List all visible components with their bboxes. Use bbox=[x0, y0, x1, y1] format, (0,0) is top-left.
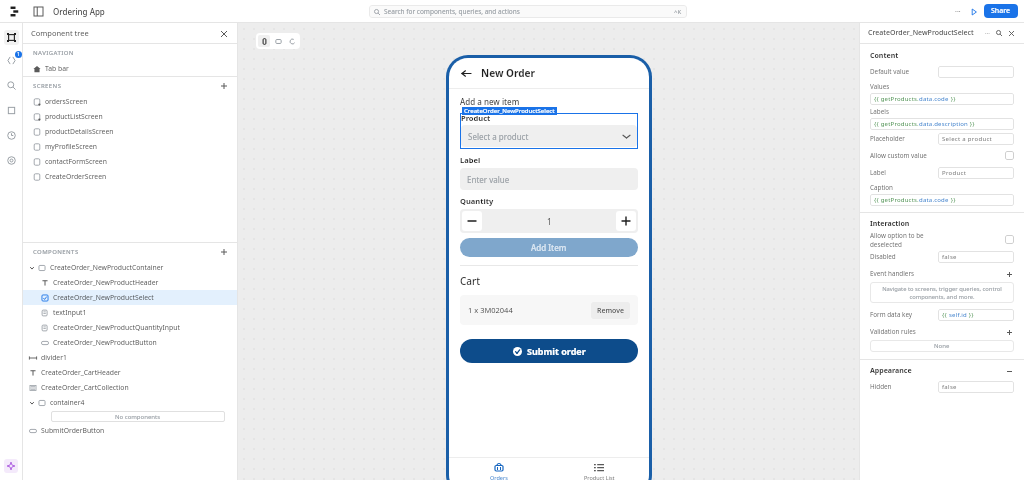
button[interactable]: {{ getProducts. bbox=[870, 93, 1014, 105]
button[interactable]: Rotate bbox=[286, 35, 298, 47]
button[interactable]: CreateOrder_NewProductContainer bbox=[23, 260, 237, 275]
staticText: CreateOrder_NewProductHeader bbox=[53, 278, 159, 287]
button[interactable]: false bbox=[938, 381, 1014, 393]
button[interactable]: container4 bbox=[23, 395, 237, 410]
button[interactable]: Submit order bbox=[460, 339, 638, 363]
button[interactable]: Components bbox=[4, 30, 19, 45]
staticText: Hidden bbox=[870, 382, 892, 391]
button[interactable]: {{ getProducts. bbox=[870, 118, 1014, 130]
button[interactable]: None bbox=[870, 340, 1014, 352]
button[interactable]: Toggle bbox=[1005, 235, 1014, 244]
button[interactable]: Add Item bbox=[460, 238, 638, 257]
button[interactable]: More bbox=[982, 28, 992, 38]
button[interactable]: AI assistant bbox=[4, 459, 18, 473]
button[interactable]: Search for components, queries, and acti… bbox=[369, 5, 687, 18]
button[interactable]: Search property bbox=[994, 28, 1004, 38]
staticText: Product bbox=[942, 169, 967, 177]
button[interactable]: false bbox=[938, 251, 1014, 263]
button[interactable]: Product List bbox=[549, 458, 649, 480]
button[interactable]: Tab bar bbox=[23, 61, 237, 76]
button[interactable]: Tablet preview bbox=[272, 35, 284, 47]
staticText: }} bbox=[967, 311, 974, 319]
button[interactable]: Increase quantity bbox=[616, 211, 636, 231]
staticText: None bbox=[934, 342, 950, 350]
staticText: Select a product bbox=[942, 135, 993, 143]
button[interactable]: Add Validation rules bbox=[1004, 327, 1014, 337]
staticText: Share bbox=[991, 6, 1011, 16]
button[interactable]: CreateOrder_NewProductHeader bbox=[23, 275, 237, 290]
button[interactable]: myProfileScreen bbox=[23, 139, 237, 154]
staticText: CreateOrder_NewProductContainer bbox=[50, 263, 164, 272]
staticText: ^K bbox=[674, 8, 682, 16]
button[interactable]: Preview bbox=[967, 5, 980, 18]
button[interactable]: CreateOrder_NewProductButton bbox=[23, 335, 237, 350]
button[interactable]: productDetailsScreen bbox=[23, 124, 237, 139]
staticText: {{ bbox=[942, 311, 949, 319]
staticText: Product List bbox=[584, 474, 615, 480]
button[interactable]: Remove bbox=[591, 302, 630, 319]
staticText: productListScreen bbox=[45, 112, 103, 121]
button[interactable]: Add COMPONENTS bbox=[219, 247, 229, 257]
button[interactable]: Share bbox=[984, 4, 1018, 18]
staticText: 1 bbox=[547, 216, 552, 227]
staticText: Enter value bbox=[467, 174, 510, 185]
staticText: }} bbox=[968, 120, 975, 128]
button[interactable]: textInput1 bbox=[23, 305, 237, 320]
button[interactable]: Phone preview bbox=[258, 35, 270, 47]
button[interactable]: CreateOrder_CartCollection bbox=[23, 380, 237, 395]
staticText: Quantity bbox=[460, 196, 494, 206]
button[interactable]: Search bbox=[4, 78, 19, 93]
button[interactable]: Assets bbox=[4, 103, 19, 118]
button[interactable]: ordersScreen bbox=[23, 94, 237, 109]
button[interactable]: Back bbox=[459, 66, 473, 80]
staticText: Orders bbox=[490, 474, 508, 480]
button[interactable]: Enter value bbox=[460, 168, 638, 190]
staticText: Search for components, queries, and acti… bbox=[384, 7, 520, 16]
staticText: {{ getProducts. bbox=[874, 95, 919, 103]
staticText: SCREENS bbox=[33, 82, 62, 90]
staticText: 1 bbox=[17, 51, 20, 58]
button[interactable]: Product bbox=[460, 113, 638, 149]
staticText: myProfileScreen bbox=[45, 142, 97, 151]
button[interactable]: Add Event handlers bbox=[1004, 269, 1014, 279]
staticText: Allow option to be deselected bbox=[870, 231, 938, 248]
staticText: contactFormScreen bbox=[45, 157, 107, 166]
staticText: New Order bbox=[481, 66, 535, 80]
button[interactable]: {{ bbox=[938, 309, 1014, 321]
button[interactable]: Product bbox=[938, 167, 1014, 179]
button[interactable]: Layout bbox=[30, 3, 46, 19]
button[interactable] bbox=[938, 66, 1014, 78]
button[interactable]: Settings bbox=[4, 153, 19, 168]
button[interactable]: productListScreen bbox=[23, 109, 237, 124]
button[interactable]: Collapse Appearance bbox=[1004, 366, 1014, 376]
staticText: Interaction bbox=[870, 219, 910, 229]
button[interactable]: Select a product bbox=[938, 133, 1014, 145]
button[interactable]: divider1 bbox=[23, 350, 237, 365]
button[interactable]: More options bbox=[951, 5, 964, 18]
staticText: productDetailsScreen bbox=[45, 127, 114, 136]
button[interactable]: Orders bbox=[449, 458, 549, 480]
button[interactable]: Close inspector bbox=[1006, 28, 1016, 38]
button[interactable]: CreateOrderScreen bbox=[23, 169, 237, 184]
button[interactable]: Toggle bbox=[1005, 151, 1014, 160]
button[interactable]: Navigate to screens, trigger queries, co… bbox=[870, 282, 1014, 303]
button[interactable]: SubmitOrderButton bbox=[23, 423, 237, 438]
staticText: Values bbox=[870, 82, 890, 91]
staticText: {{ getProducts. bbox=[874, 196, 919, 204]
button[interactable]: CreateOrder_NewProductSelect bbox=[23, 290, 237, 305]
button[interactable]: 1 x 3M02044 bbox=[460, 295, 638, 325]
button[interactable]: contactFormScreen bbox=[23, 154, 237, 169]
button[interactable]: Close panel bbox=[218, 28, 229, 39]
staticText: false bbox=[942, 253, 957, 261]
button[interactable]: CreateOrder_CartHeader bbox=[23, 365, 237, 380]
button[interactable]: {{ getProducts. bbox=[870, 194, 1014, 206]
button[interactable]: Decrease quantity bbox=[462, 211, 482, 231]
button[interactable]: History bbox=[4, 128, 19, 143]
staticText: CreateOrder_NewProductQuantityInput bbox=[53, 323, 180, 332]
staticText: Ordering App bbox=[53, 6, 105, 17]
button[interactable]: Code bbox=[4, 53, 19, 68]
button[interactable]: CreateOrder_NewProductQuantityInput bbox=[23, 320, 237, 335]
button[interactable]: Home bbox=[6, 2, 24, 20]
button[interactable]: Add SCREENS bbox=[219, 81, 229, 91]
staticText: 1 x 3M02044 bbox=[468, 305, 513, 315]
